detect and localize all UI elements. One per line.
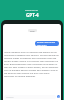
button[interactable]: Today bbox=[28, 29, 37, 32]
button[interactable]: Explain how neural nets learn bbox=[35, 41, 59, 46]
button[interactable]: Send bbox=[57, 95, 60, 98]
staticText: Today bbox=[30, 30, 35, 32]
staticText: GPT-4 bbox=[26, 12, 39, 18]
button[interactable]: Message bbox=[4, 95, 56, 99]
staticText: Explain how neural nets learn bbox=[37, 41, 57, 46]
staticText: Neural networks learn by adjusting the w… bbox=[4, 51, 59, 78]
staticText: Powered by bbox=[25, 8, 39, 11]
staticText: Message bbox=[6, 96, 14, 98]
